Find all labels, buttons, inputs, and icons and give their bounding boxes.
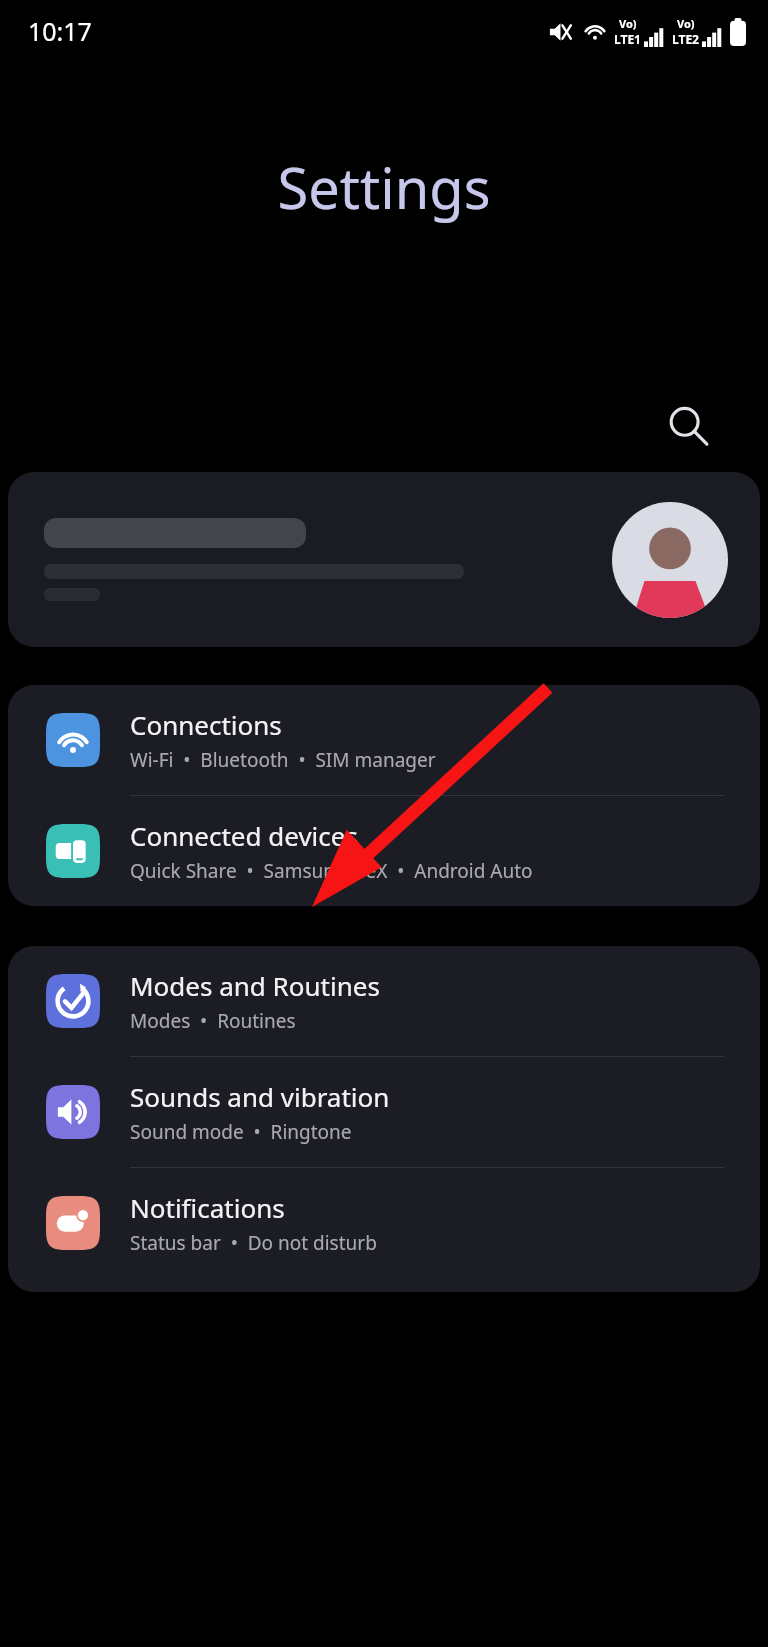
staticText: Sound mode • Ringtone (130, 1119, 352, 1145)
staticText: Wi-Fi • Bluetooth • SIM manager (130, 747, 436, 773)
staticText: Notifications (130, 1190, 285, 1225)
staticText: Connections (130, 707, 282, 742)
staticText: 10:17 (28, 14, 92, 48)
staticText: Connected devices (130, 818, 358, 853)
button[interactable]: Search (660, 398, 716, 454)
button[interactable]: Samsung account (8, 472, 760, 647)
staticText: LTE1 (614, 31, 641, 47)
staticText: LTE2 (672, 31, 699, 47)
staticText: Vo) (619, 16, 637, 31)
staticText: Quick Share • Samsung DeX • Android Auto (130, 858, 533, 884)
staticText: Status bar • Do not disturb (130, 1230, 377, 1256)
button[interactable]: Modes and Routines (8, 946, 760, 1056)
button[interactable]: Connections (8, 685, 760, 795)
staticText: Modes • Routines (130, 1008, 296, 1034)
button[interactable]: Sounds and vibration (8, 1057, 760, 1167)
button[interactable]: Connected devices (8, 796, 760, 906)
staticText: Settings (277, 149, 491, 225)
staticText: Sounds and vibration (130, 1079, 390, 1114)
staticText: Vo) (677, 16, 695, 31)
button[interactable]: Notifications (8, 1168, 760, 1278)
staticText: Modes and Routines (130, 968, 380, 1003)
